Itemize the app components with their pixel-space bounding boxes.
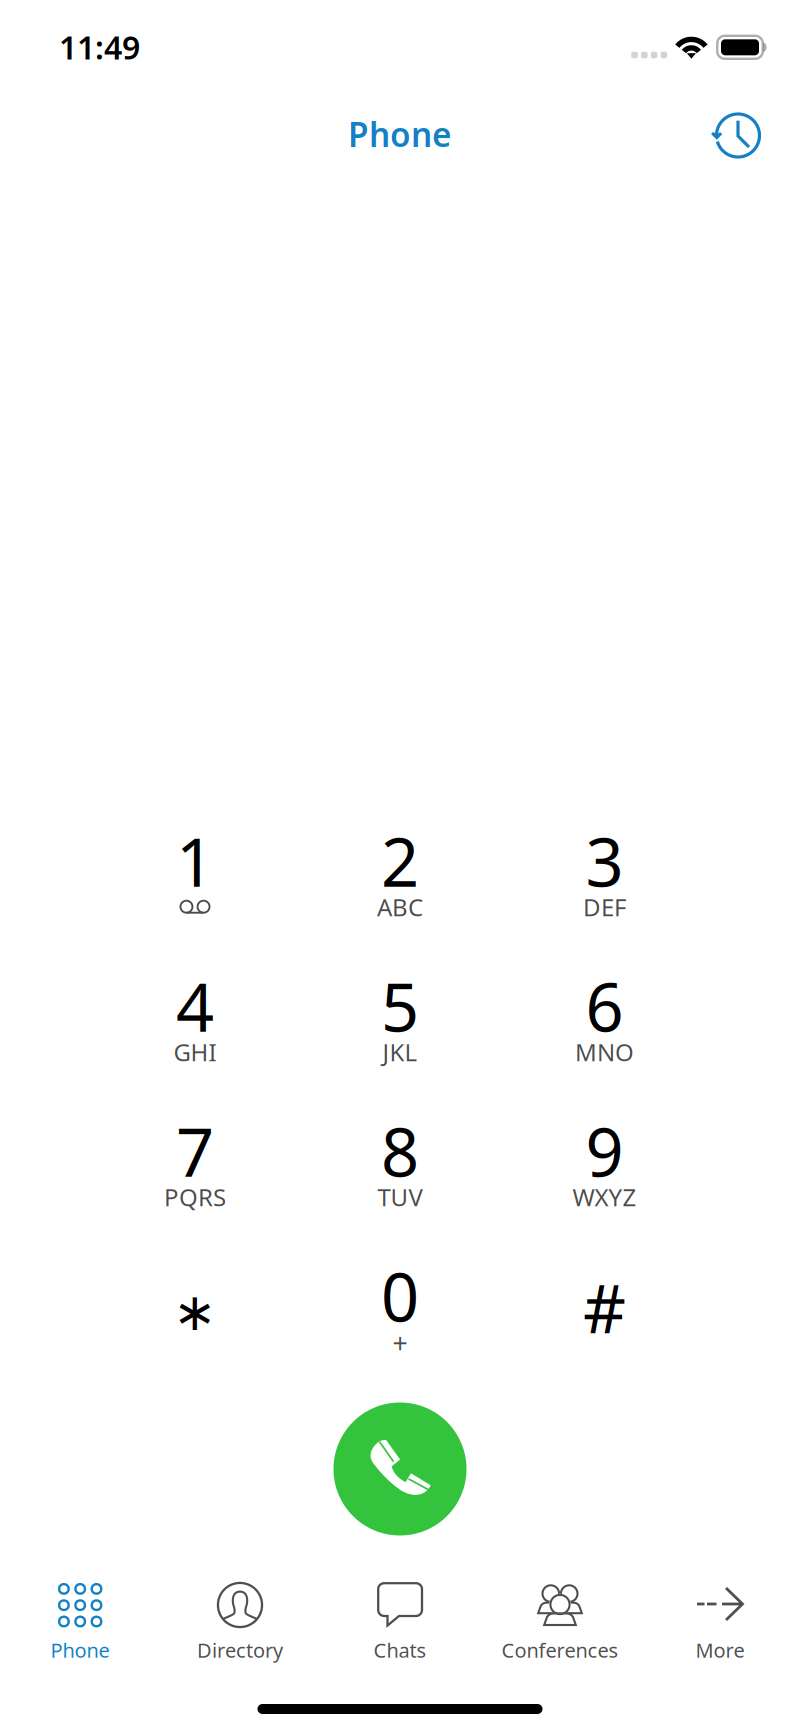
- staticText: PQRS: [164, 1181, 226, 1213]
- staticText: More: [695, 1637, 744, 1663]
- staticText: 9: [585, 1107, 623, 1195]
- staticText: 0: [381, 1252, 419, 1340]
- button[interactable]: Chats: [320, 1567, 480, 1679]
- staticText: 2: [381, 817, 419, 905]
- staticText: 8: [381, 1107, 419, 1195]
- button[interactable]: 2: [320, 809, 480, 941]
- staticText: 11:49: [59, 26, 140, 68]
- staticText: 4: [176, 962, 214, 1050]
- button[interactable]: Call: [333, 1402, 466, 1535]
- button[interactable]: 3: [524, 809, 684, 941]
- button[interactable]: 8: [320, 1099, 480, 1231]
- staticText: #: [583, 1263, 626, 1352]
- button[interactable]: Directory: [160, 1567, 320, 1679]
- button[interactable]: 0: [320, 1244, 480, 1376]
- button[interactable]: ∗: [115, 1244, 275, 1376]
- staticText: DEF: [583, 891, 626, 923]
- button[interactable]: 1: [115, 809, 275, 941]
- button[interactable]: 4: [115, 954, 275, 1086]
- staticText: Chats: [373, 1637, 426, 1663]
- staticText: 1: [176, 817, 214, 905]
- staticText: 7: [176, 1107, 214, 1195]
- staticText: Directory: [197, 1637, 283, 1663]
- staticText: +: [392, 1325, 407, 1361]
- staticText: 3: [585, 817, 623, 905]
- button[interactable]: 6: [524, 954, 684, 1086]
- staticText: ∗: [173, 1282, 217, 1341]
- staticText: 6: [585, 962, 623, 1050]
- button[interactable]: Conferences: [480, 1567, 640, 1679]
- button[interactable]: 5: [320, 954, 480, 1086]
- button[interactable]: Phone: [0, 1567, 160, 1679]
- staticText: Conferences: [501, 1637, 618, 1663]
- staticText: TUV: [377, 1181, 422, 1213]
- button[interactable]: 7: [115, 1099, 275, 1231]
- staticText: GHI: [173, 1036, 216, 1068]
- staticText: MNO: [575, 1036, 634, 1068]
- button[interactable]: More: [640, 1567, 800, 1679]
- staticText: WXYZ: [572, 1181, 636, 1213]
- button[interactable]: #: [524, 1244, 684, 1376]
- staticText: ABC: [377, 891, 423, 923]
- button[interactable]: Recents: [696, 93, 784, 181]
- button[interactable]: 9: [524, 1099, 684, 1231]
- staticText: Phone: [348, 112, 452, 156]
- staticText: 5: [381, 962, 419, 1050]
- staticText: JKL: [382, 1036, 417, 1068]
- staticText: Phone: [50, 1637, 109, 1663]
